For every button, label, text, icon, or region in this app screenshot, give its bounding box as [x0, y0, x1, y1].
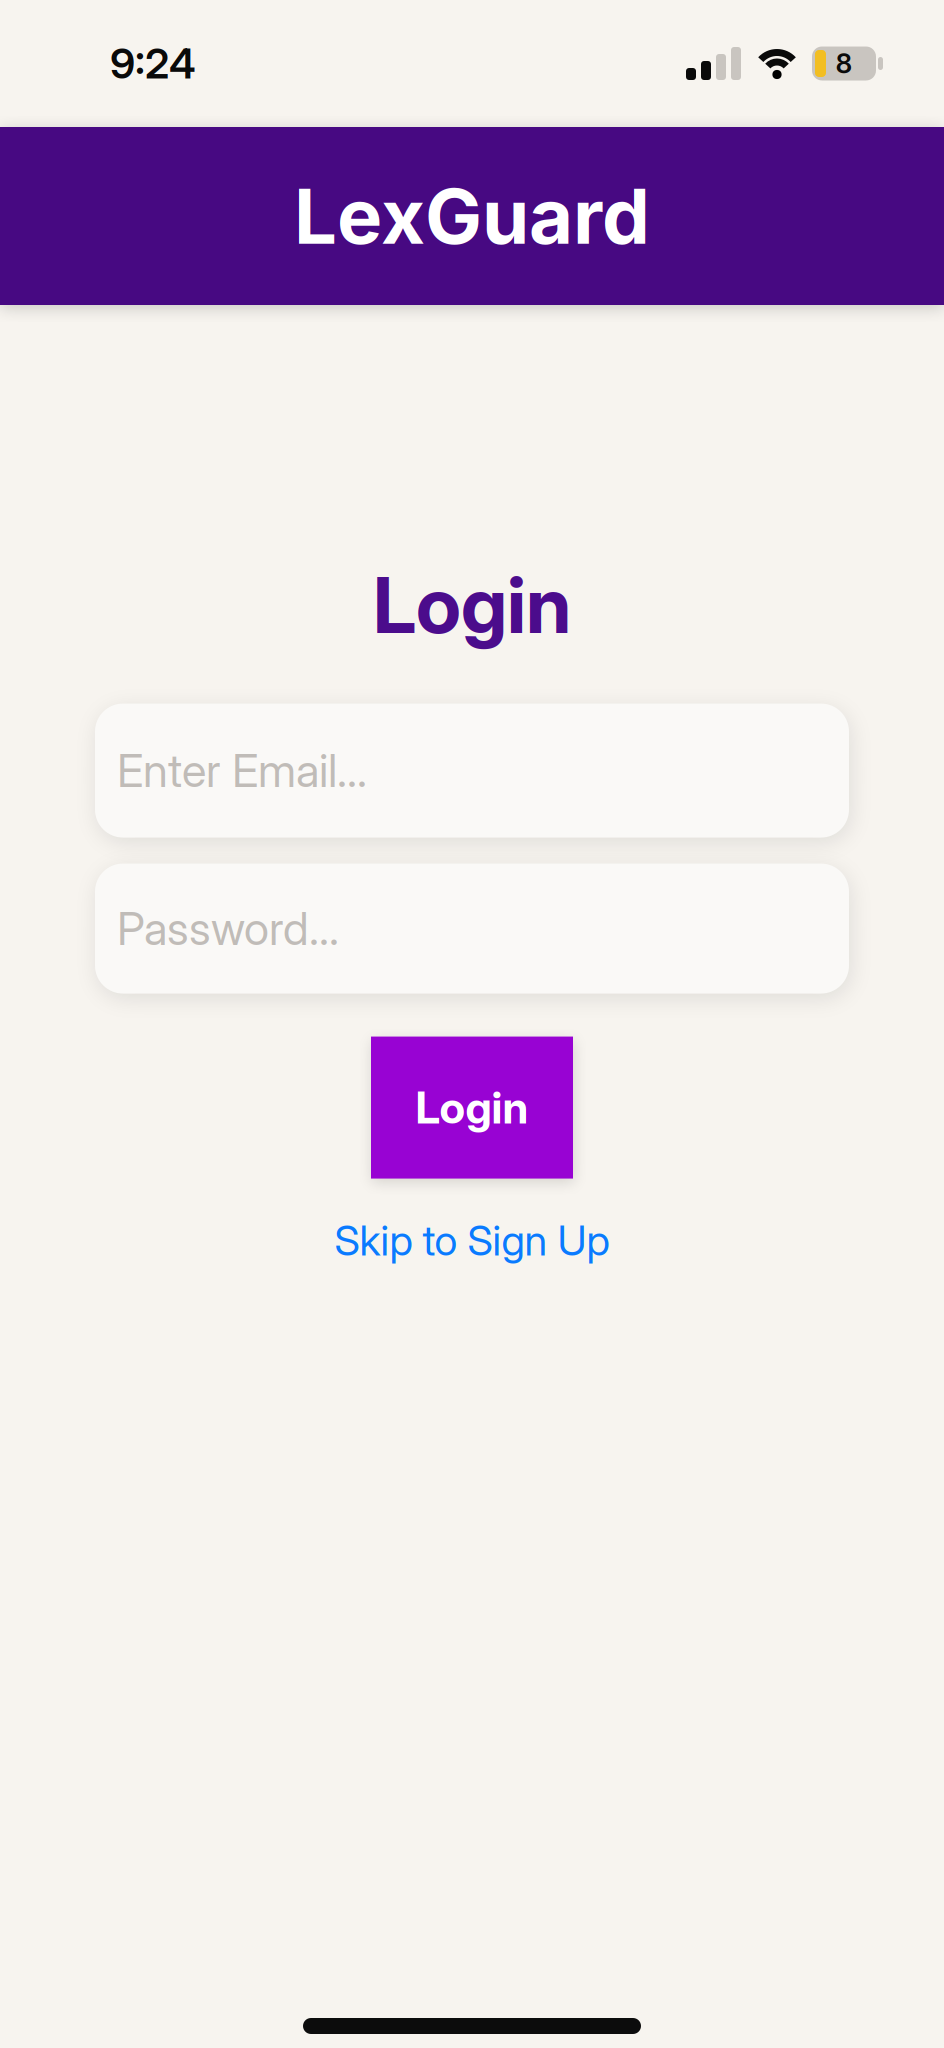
button[interactable]: Password...	[95, 864, 849, 994]
button[interactable]: Enter Email...	[95, 704, 849, 838]
button[interactable]: Login	[371, 1037, 573, 1179]
staticText: Skip to Sign Up	[334, 1216, 609, 1266]
staticText: LexGuard	[294, 170, 650, 262]
staticText: Enter Email...	[117, 743, 367, 798]
staticText: Login	[373, 558, 571, 652]
staticText: Login	[415, 1081, 528, 1134]
staticText: Password...	[117, 901, 339, 956]
button[interactable]: Skip to Sign Up	[334, 1216, 609, 1266]
staticText: 9:24	[110, 38, 196, 88]
staticText: 8	[835, 47, 852, 80]
